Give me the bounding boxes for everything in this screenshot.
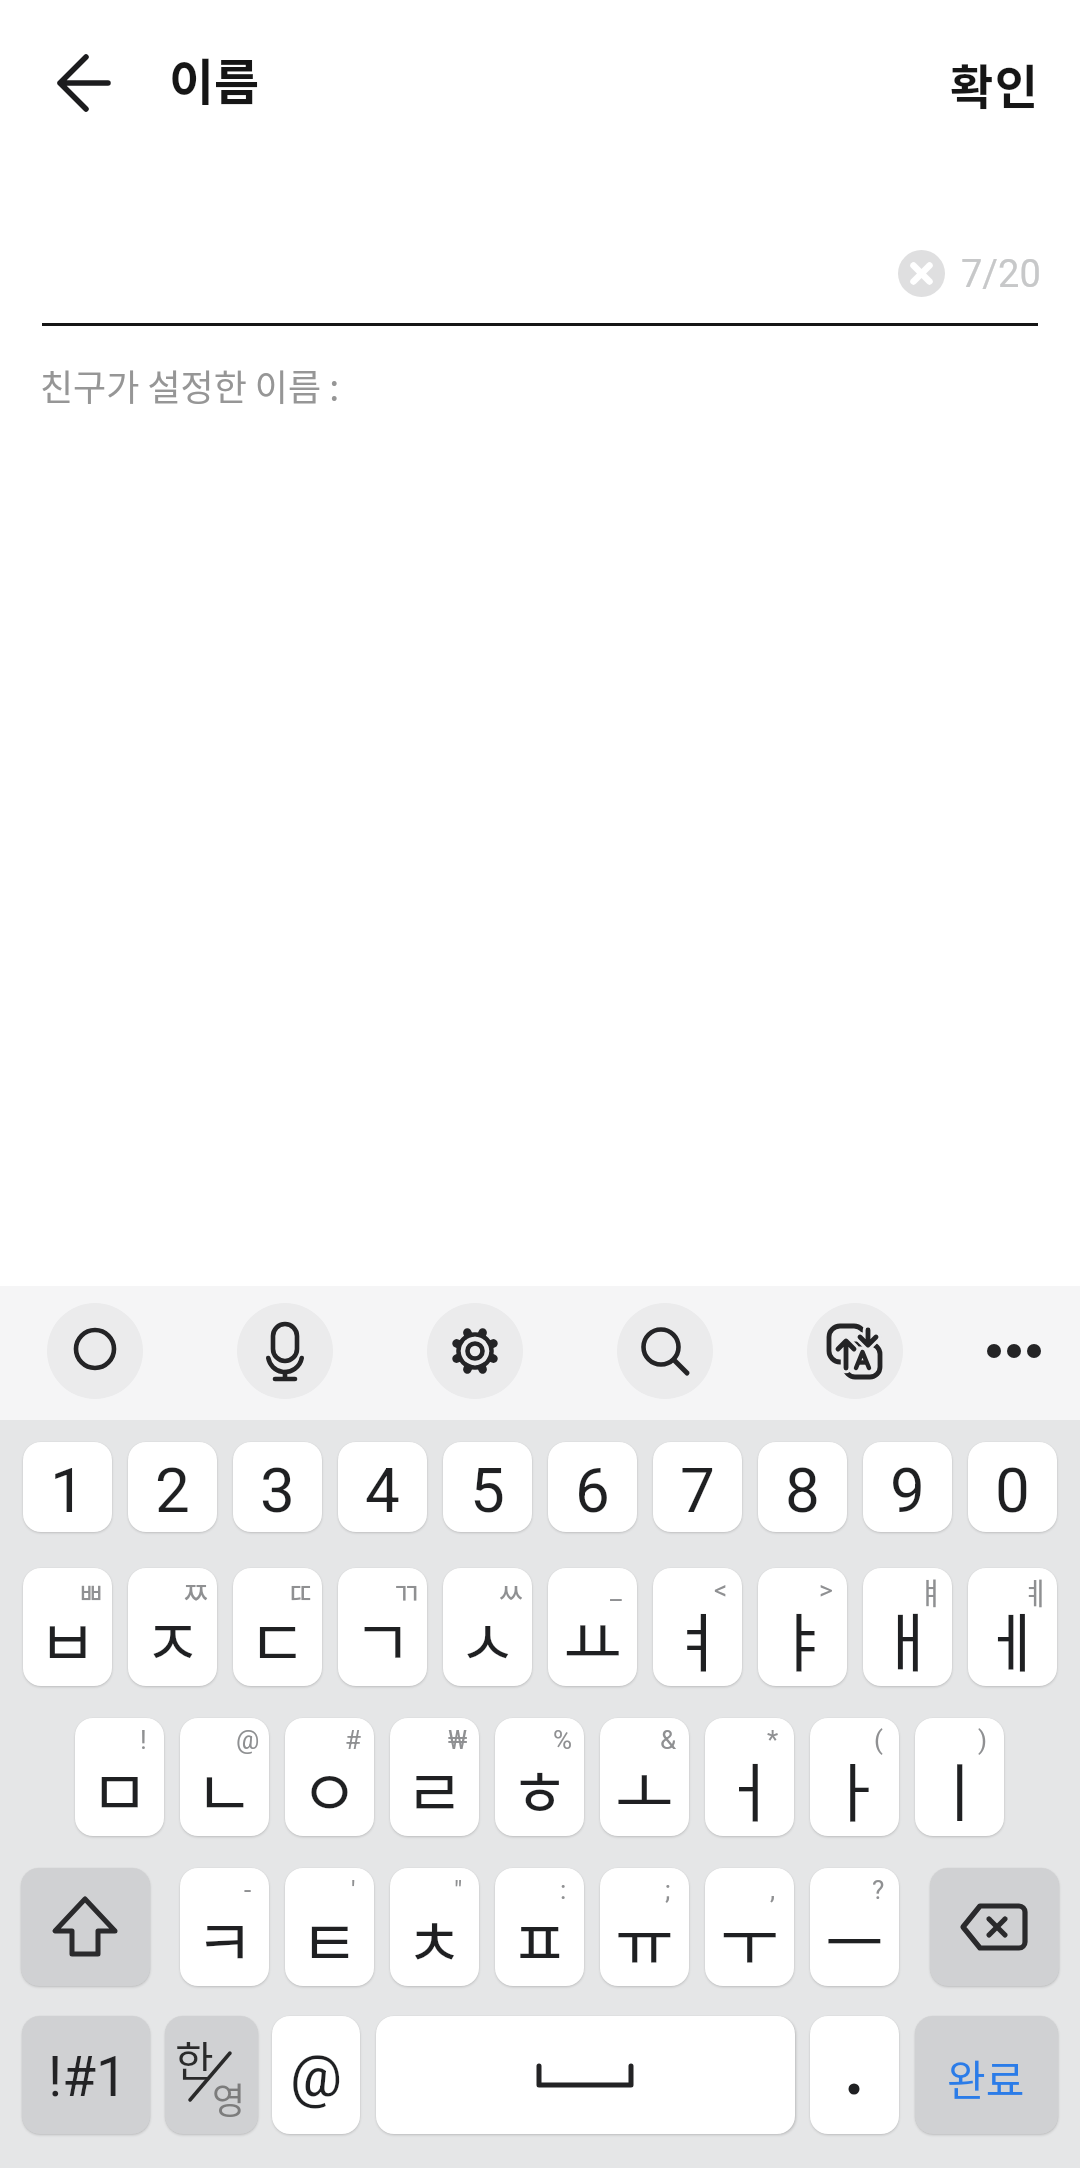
button[interactable] — [75, 1718, 164, 1836]
button[interactable] — [23, 1442, 112, 1532]
staticText: 0 — [995, 1454, 1030, 1527]
button[interactable] — [180, 1718, 269, 1836]
button[interactable] — [968, 1568, 1057, 1686]
staticText: ㅈ — [143, 1592, 202, 1685]
button[interactable] — [22, 2016, 150, 2134]
button[interactable] — [600, 1718, 689, 1836]
button[interactable] — [653, 1568, 742, 1686]
button[interactable] — [21, 1868, 150, 1986]
staticText: ㅉ — [182, 1569, 210, 1612]
staticText: ㅇ — [300, 1742, 359, 1835]
staticText: ㄴ — [195, 1742, 254, 1835]
staticText: 2 — [155, 1454, 190, 1527]
staticText: " — [454, 1875, 463, 1905]
staticText: ㅑ — [773, 1592, 832, 1685]
button[interactable] — [272, 2016, 360, 2134]
staticText: 4 — [365, 1454, 400, 1527]
button[interactable] — [810, 1718, 899, 1836]
button[interactable] — [968, 1442, 1057, 1532]
staticText: _ — [610, 1575, 622, 1605]
button[interactable] — [48, 47, 120, 119]
button[interactable] — [915, 2016, 1058, 2134]
button[interactable] — [758, 1568, 847, 1686]
staticText: 한 — [175, 2028, 214, 2089]
staticText: & — [660, 1725, 677, 1755]
button[interactable] — [758, 1442, 847, 1532]
button[interactable] — [390, 1868, 479, 1986]
staticText: @ — [290, 2042, 343, 2110]
staticText: ㄸ — [287, 1569, 315, 1612]
staticText: 5 — [470, 1454, 505, 1527]
staticText: - — [244, 1875, 252, 1905]
button[interactable] — [23, 1568, 112, 1686]
staticText: ㄱ — [353, 1592, 412, 1685]
button[interactable] — [863, 1568, 952, 1686]
staticText: ㄹ — [405, 1742, 464, 1835]
staticText: ㅕ — [668, 1592, 727, 1685]
staticText: ㅓ — [720, 1742, 779, 1835]
button[interactable] — [810, 2016, 899, 2134]
button[interactable] — [617, 1303, 713, 1399]
staticText: 확인 — [950, 49, 1040, 117]
staticText: 6 — [575, 1454, 610, 1527]
button[interactable] — [443, 1568, 532, 1686]
staticText: 7/20 — [961, 252, 1041, 297]
staticText: # — [345, 1725, 362, 1755]
button[interactable] — [495, 1718, 584, 1836]
staticText: : — [560, 1875, 567, 1905]
button[interactable] — [180, 1868, 269, 1986]
staticText: ㅛ — [563, 1592, 622, 1685]
staticText: ㅋ — [195, 1892, 254, 1985]
button[interactable] — [233, 1442, 322, 1532]
staticText: ㅣ — [930, 1742, 989, 1835]
button[interactable] — [600, 1868, 689, 1986]
button[interactable] — [653, 1442, 742, 1532]
button[interactable] — [128, 1442, 217, 1532]
button[interactable] — [915, 1718, 1004, 1836]
button[interactable]: 확인 — [930, 40, 1060, 126]
staticText: ㅒ — [917, 1569, 945, 1612]
button[interactable] — [128, 1568, 217, 1686]
staticText: * — [767, 1725, 779, 1755]
button[interactable] — [338, 1568, 427, 1686]
button[interactable] — [974, 1311, 1054, 1391]
staticText: 친구가 설정한 이름 : — [40, 359, 340, 411]
button[interactable] — [338, 1442, 427, 1532]
button[interactable] — [390, 1718, 479, 1836]
button[interactable] — [443, 1442, 532, 1532]
staticText: ㅊ — [405, 1892, 464, 1985]
button[interactable] — [705, 1868, 794, 1986]
staticText: ㄷ — [248, 1592, 307, 1685]
button[interactable] — [427, 1303, 523, 1399]
button[interactable] — [863, 1442, 952, 1532]
button[interactable] — [376, 2016, 795, 2134]
button[interactable] — [898, 250, 945, 297]
staticText: ) — [978, 1725, 988, 1755]
staticText: ㅁ — [90, 1742, 149, 1835]
button[interactable] — [807, 1303, 903, 1399]
button[interactable] — [930, 1868, 1059, 1986]
button[interactable] — [233, 1568, 322, 1686]
button[interactable] — [548, 1442, 637, 1532]
staticText: 영 — [212, 2072, 246, 2124]
staticText: ㅗ — [615, 1742, 674, 1835]
staticText: ㅂ — [38, 1592, 97, 1685]
button[interactable] — [495, 1868, 584, 1986]
button[interactable] — [285, 1868, 374, 1986]
staticText: 이름 — [169, 43, 260, 114]
button[interactable] — [165, 2016, 258, 2134]
button[interactable] — [548, 1568, 637, 1686]
button[interactable] — [705, 1718, 794, 1836]
button[interactable] — [810, 1868, 899, 1986]
staticText: ㄲ — [392, 1569, 420, 1612]
button[interactable] — [237, 1303, 333, 1399]
staticText: ㅠ — [615, 1892, 674, 1985]
staticText: , — [770, 1875, 776, 1905]
staticText: 완료 — [947, 2047, 1025, 2108]
staticText: ㅍ — [510, 1892, 569, 1985]
staticText: ㅌ — [300, 1892, 359, 1985]
staticText: ㅆ — [497, 1569, 525, 1612]
button[interactable] — [285, 1718, 374, 1836]
button[interactable] — [47, 1303, 143, 1399]
staticText: ; — [665, 1875, 671, 1905]
